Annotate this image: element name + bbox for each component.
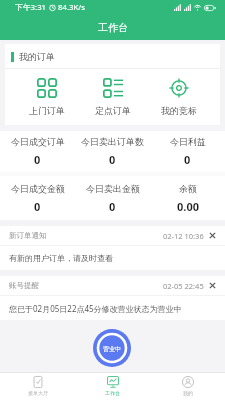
staticText: 余额 [179,183,197,194]
staticText: 下午3:31 [15,2,47,13]
staticText: 定点订单 [95,105,131,116]
staticText: 工作台 [98,21,128,34]
button[interactable]: 我的竞标 [146,69,212,125]
staticText: 0 [34,152,41,167]
staticText: 0.00 [177,199,199,214]
button[interactable]: 新订单通知 [0,226,225,270]
staticText: 今日成交订单 [11,136,65,147]
staticText: 我的订单 [19,51,55,62]
staticText: 0 [109,152,116,167]
staticText: 营业中 [103,345,121,353]
staticText: 今日卖出金额 [86,183,140,194]
staticText: 我的竞标 [161,105,197,116]
staticText: 工作台 [105,390,120,396]
staticText: 账号提醒 [9,281,39,290]
staticText: 接单大厅 [28,390,48,396]
staticText: 今日利益 [170,136,206,147]
staticText: 新订单通知 [9,231,47,240]
button[interactable]: 定点订单 [80,69,146,125]
button[interactable]: 关闭 [208,281,217,290]
staticText: 02-05 22:45 [163,281,204,291]
button[interactable]: 账号提醒 [0,276,225,320]
staticText: 84.3K/s [58,2,85,13]
staticText: 有新的用户订单，请及时查看 [9,253,216,263]
staticText: 02-12 10:36 [163,231,204,241]
staticText: 0 [184,152,191,167]
staticText: 您已于02月05日22点45分修改营业状态为营业中 [9,303,216,314]
staticText: 0 [34,199,41,214]
staticText: 今日卖出订单数 [81,136,144,147]
staticText: 上门订单 [29,105,65,116]
button[interactable]: 营业中 [93,329,131,367]
button[interactable]: 关闭 [208,231,217,240]
button[interactable]: 接单大厅 [0,372,75,400]
button[interactable]: 我的 [150,372,225,400]
button[interactable]: 工作台 [75,372,150,400]
button[interactable]: 上门订单 [13,69,80,125]
staticText: 我的 [183,390,193,396]
staticText: 0 [109,199,116,214]
staticText: 今日成交金额 [11,183,65,194]
